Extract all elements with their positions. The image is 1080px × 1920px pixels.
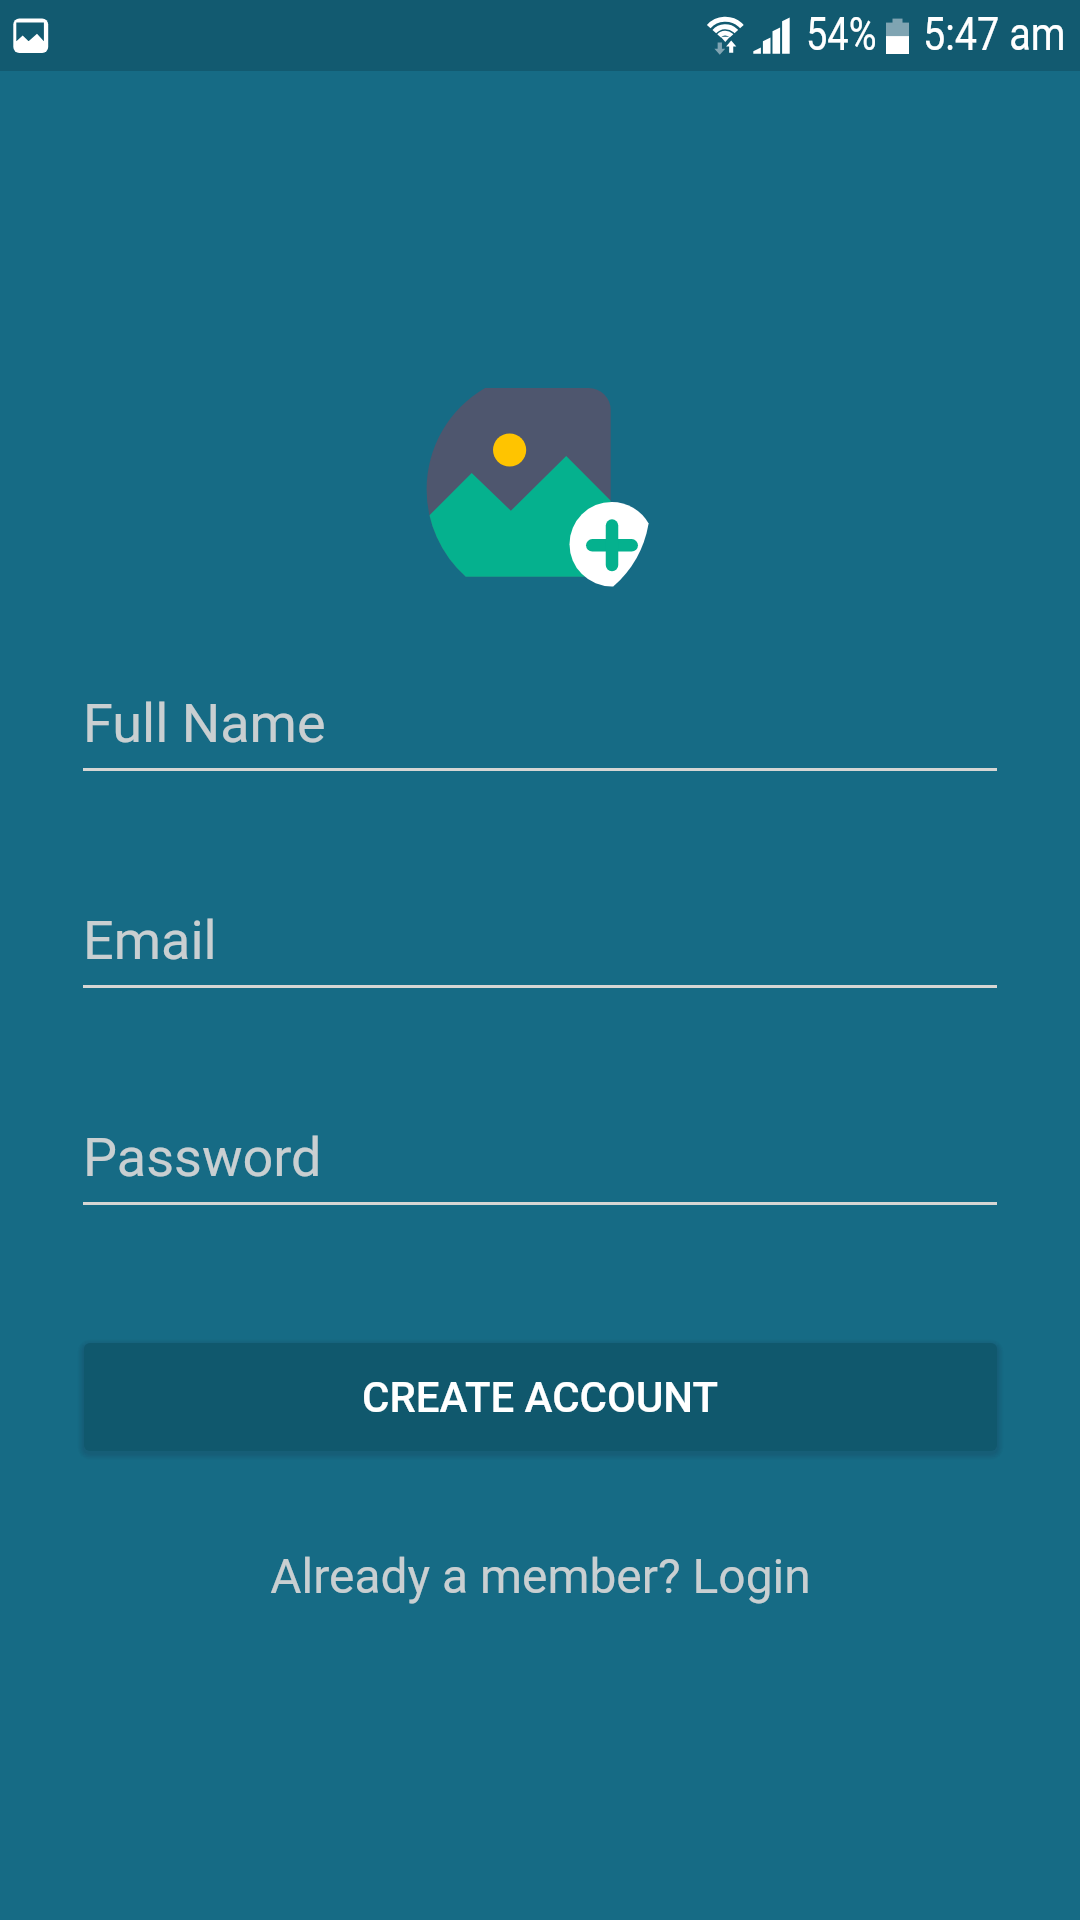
button[interactable]: CREATE ACCOUNT <box>84 1343 997 1451</box>
staticText: Email <box>83 909 217 972</box>
staticText: Full Name <box>83 692 326 755</box>
staticText: CREATE ACCOUNT <box>362 1373 719 1422</box>
staticText: 54% <box>806 7 877 61</box>
staticText: 5:47 am <box>923 7 1066 61</box>
button[interactable]: Email <box>83 904 997 990</box>
staticText: Already a member? Login <box>270 1548 811 1605</box>
button[interactable]: Password <box>83 1121 997 1207</box>
staticText: Password <box>83 1126 322 1189</box>
button[interactable]: Already a member? Login <box>0 1526 1080 1626</box>
button[interactable]: Full Name <box>83 687 997 773</box>
